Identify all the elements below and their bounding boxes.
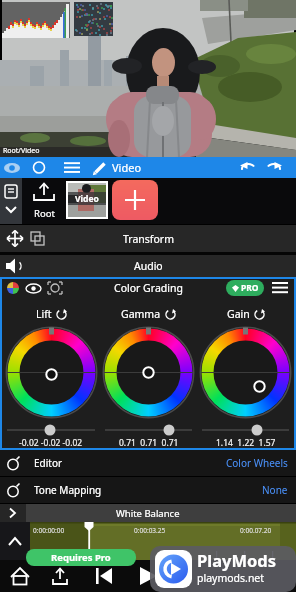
staticText: Gamma	[121, 307, 161, 321]
staticText: Gain	[227, 307, 250, 321]
button[interactable]: Color Grading	[2, 277, 294, 299]
button[interactable]: Editor	[0, 450, 296, 477]
staticText: Root/Video	[3, 146, 40, 156]
staticText: Root	[34, 207, 55, 220]
button[interactable]: White Balance	[0, 504, 296, 522]
staticText: 0:00.07.20	[240, 526, 272, 535]
button[interactable]: Tone Mapping	[0, 477, 296, 504]
staticText: Video	[112, 160, 142, 175]
staticText: Color Wheels	[226, 456, 288, 470]
button[interactable]: Transform	[0, 225, 296, 252]
button[interactable]: PlayMods	[150, 546, 296, 592]
staticText: White Balance	[116, 507, 180, 520]
button[interactable]: Root	[22, 178, 66, 224]
button[interactable]: PRO	[226, 280, 264, 296]
staticText: Tone Mapping	[34, 483, 102, 497]
staticText: PRO	[241, 282, 259, 294]
staticText: PlayMods	[197, 549, 277, 571]
staticText: 0:00:03.25	[134, 526, 166, 535]
staticText: Color Grading	[114, 281, 183, 295]
staticText: None	[262, 483, 288, 497]
button[interactable]: Audio	[0, 255, 296, 277]
button[interactable]: Video	[66, 181, 108, 219]
staticText: Requires Pro	[51, 551, 111, 564]
staticText: Editor	[34, 456, 63, 470]
staticText: Video	[75, 193, 99, 205]
staticText: playmods.net	[197, 571, 265, 585]
staticText: Audio	[134, 259, 163, 273]
staticText: Lift	[36, 307, 52, 321]
staticText: 0.71 0.71 0.71	[119, 437, 179, 449]
staticText: 1.14 1.22 1.57	[216, 437, 276, 449]
staticText: 0:00:00:00	[33, 526, 65, 535]
staticText: -0.02 -0.02 -0.02	[19, 437, 83, 449]
button[interactable]: Requires Pro	[26, 549, 136, 566]
button[interactable]	[0, 178, 22, 224]
button[interactable]	[112, 180, 158, 220]
staticText: Transform	[123, 232, 174, 246]
